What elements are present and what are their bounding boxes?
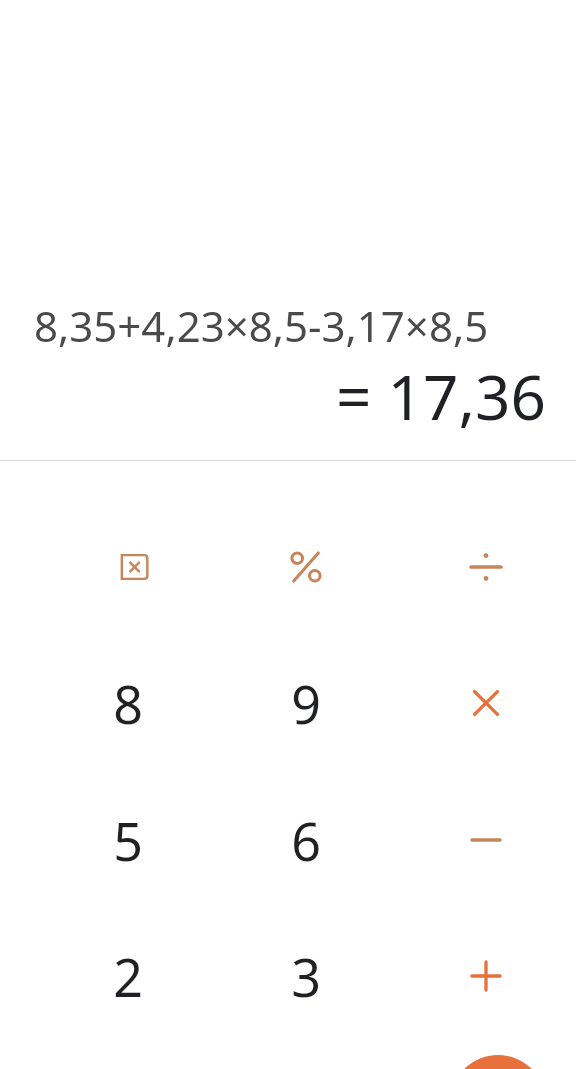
button[interactable]: 8 [53,643,203,763]
staticText: = 17,36 [34,354,546,432]
button[interactable]: 2 [53,916,203,1036]
staticText: 3 [291,941,321,1012]
staticText: 2 [113,941,143,1012]
button[interactable]: Plus [411,916,561,1036]
button[interactable]: Divide [411,507,561,627]
button[interactable]: 6 [231,780,381,900]
button[interactable]: Minus [411,780,561,900]
staticText: 5 [113,805,143,876]
button[interactable]: Equals [450,1055,546,1069]
staticText: 9 [291,668,321,739]
button[interactable]: 9 [231,643,381,763]
button[interactable]: Percent [231,507,381,627]
button[interactable]: Multiply [411,643,561,763]
button[interactable]: Backspace [53,507,203,627]
staticText: 8 [113,668,143,739]
staticText: 6 [291,805,321,876]
button[interactable]: 3 [231,916,381,1036]
button[interactable]: 5 [53,780,203,900]
staticText: 8,35+4,23×8,5-3,17×8,5 [34,297,489,354]
